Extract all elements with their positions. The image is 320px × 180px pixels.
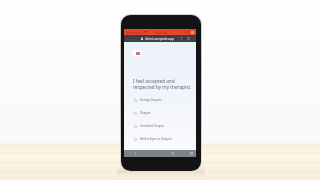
button[interactable]: Disagree <box>124 107 196 119</box>
button[interactable]: Recent apps <box>184 150 198 157</box>
staticText: client.compsite.app <box>145 37 175 41</box>
staticText: Neither Agree or Disagree <box>140 137 172 141</box>
button[interactable]: Neither Agree or Disagree <box>124 133 196 145</box>
button[interactable]: Home <box>165 150 179 157</box>
staticText: Strongly Disagree <box>140 98 162 102</box>
staticText: Messages <box>126 30 142 34</box>
button[interactable]: Strongly Disagree <box>124 94 196 106</box>
staticText: Share <box>126 37 133 40</box>
button[interactable]: Home <box>132 50 143 56</box>
staticText: I feel accepted and respected by my ther… <box>133 78 199 91</box>
staticText: 34% <box>184 30 191 34</box>
staticText: Somewhat Disagree <box>140 124 165 128</box>
staticText: Disagree <box>140 111 151 115</box>
staticText: 9:45 AM <box>155 30 168 34</box>
button[interactable]: Somewhat Disagree <box>124 120 196 132</box>
button[interactable]: Back <box>128 150 142 157</box>
